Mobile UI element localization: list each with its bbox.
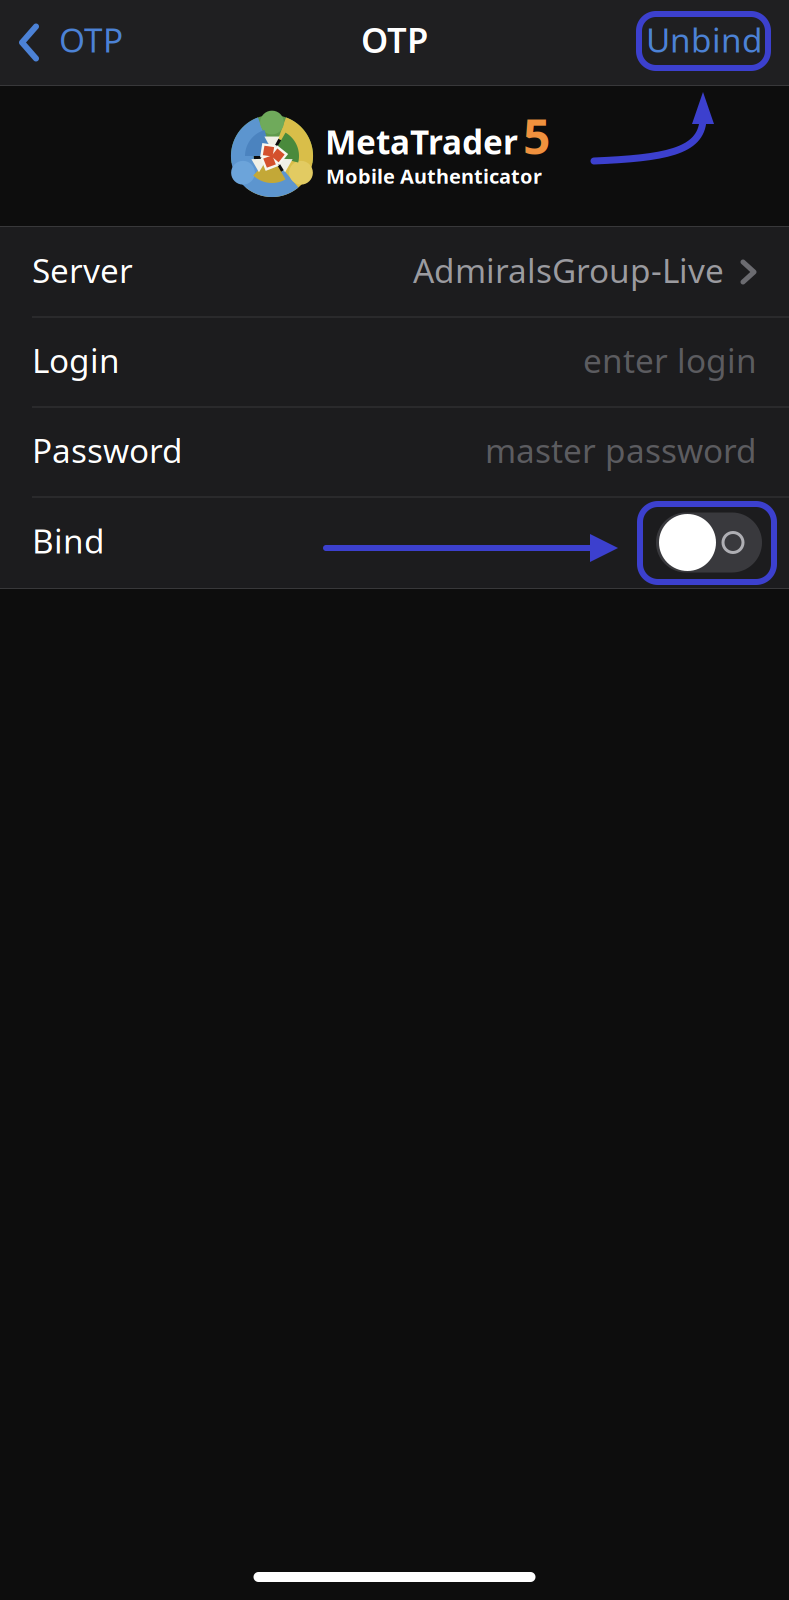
staticText: MetaTrader xyxy=(325,120,518,164)
button[interactable]: Bind xyxy=(656,512,762,572)
staticText: Password xyxy=(32,428,183,472)
staticText: Server xyxy=(32,248,133,292)
staticText: master password xyxy=(485,428,757,472)
staticText: enter login xyxy=(583,338,757,382)
staticText: AdmiralsGroup-Live xyxy=(413,248,724,292)
staticText: Mobile Authenticator xyxy=(326,163,542,189)
staticText: Unbind xyxy=(646,17,763,62)
staticText: Login xyxy=(32,338,120,382)
button[interactable]: Server xyxy=(0,227,789,316)
button[interactable]: OTP xyxy=(0,0,135,85)
staticText: OTP xyxy=(59,17,123,62)
button[interactable]: Login xyxy=(0,317,789,406)
staticText: Bind xyxy=(32,518,105,563)
staticText: 5 xyxy=(523,104,550,168)
button[interactable]: Password xyxy=(0,407,789,496)
button[interactable]: Unbind xyxy=(626,0,789,85)
staticText: OTP xyxy=(361,16,428,62)
